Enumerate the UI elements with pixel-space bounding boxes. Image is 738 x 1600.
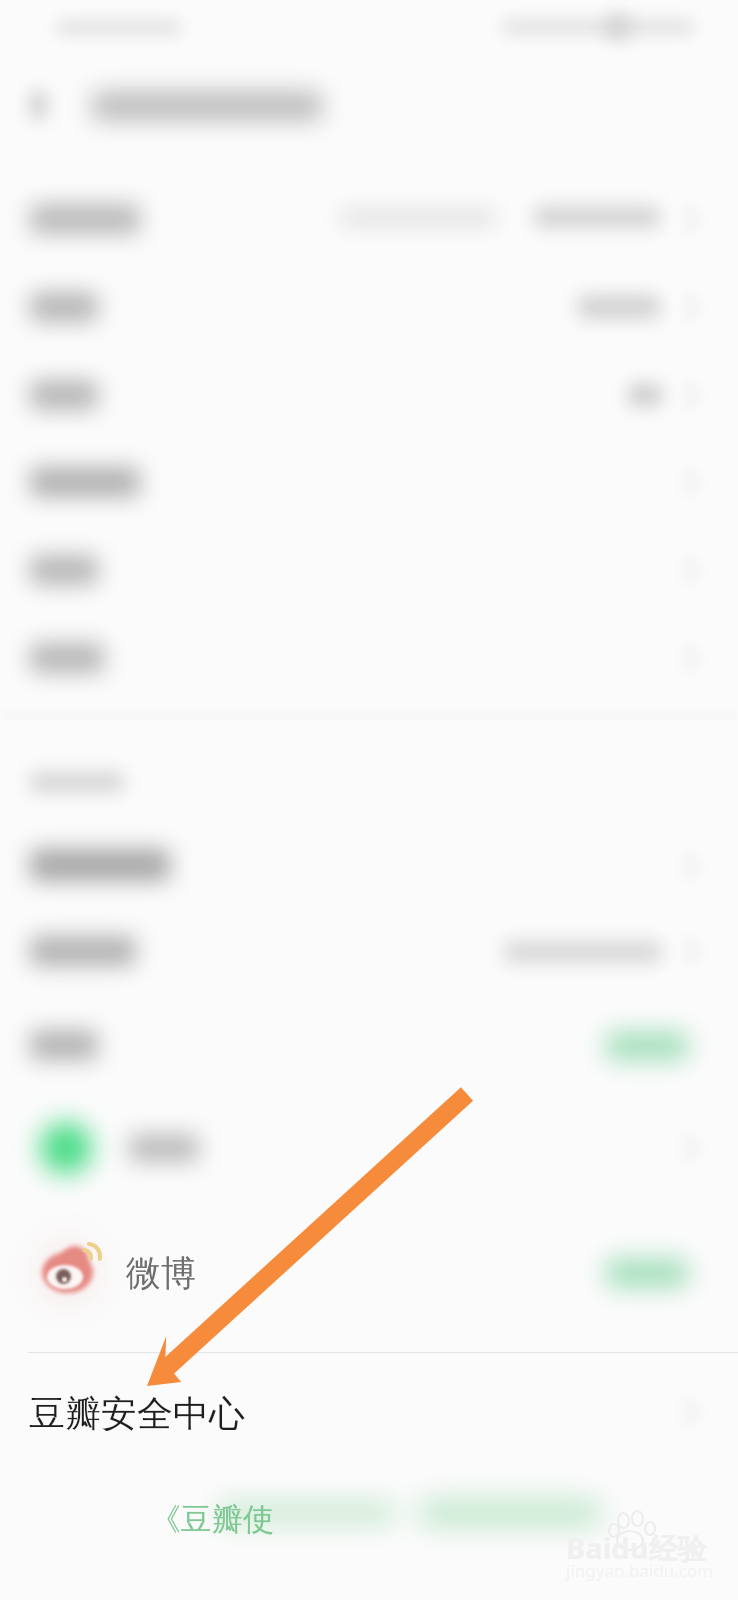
staticText: Baidu经验 — [566, 1528, 707, 1568]
button[interactable] — [0, 822, 738, 910]
button[interactable] — [0, 614, 738, 702]
staticText: 《豆瓣使 — [150, 1500, 274, 1539]
button[interactable] — [0, 526, 738, 614]
staticText: 微博 — [126, 1251, 196, 1295]
button[interactable] — [0, 263, 738, 351]
staticText: jingyan.baidu.com — [566, 1559, 714, 1582]
button[interactable] — [0, 907, 738, 995]
button[interactable] — [0, 1353, 738, 1449]
button[interactable] — [0, 351, 738, 439]
button[interactable] — [0, 175, 738, 263]
button[interactable] — [0, 1228, 738, 1316]
button[interactable] — [0, 1108, 738, 1196]
button[interactable] — [140, 1485, 580, 1535]
button[interactable] — [0, 438, 738, 526]
button[interactable]: Back — [16, 76, 78, 138]
staticText: 豆瓣安全中心 — [29, 1391, 245, 1436]
button[interactable] — [0, 1001, 738, 1089]
